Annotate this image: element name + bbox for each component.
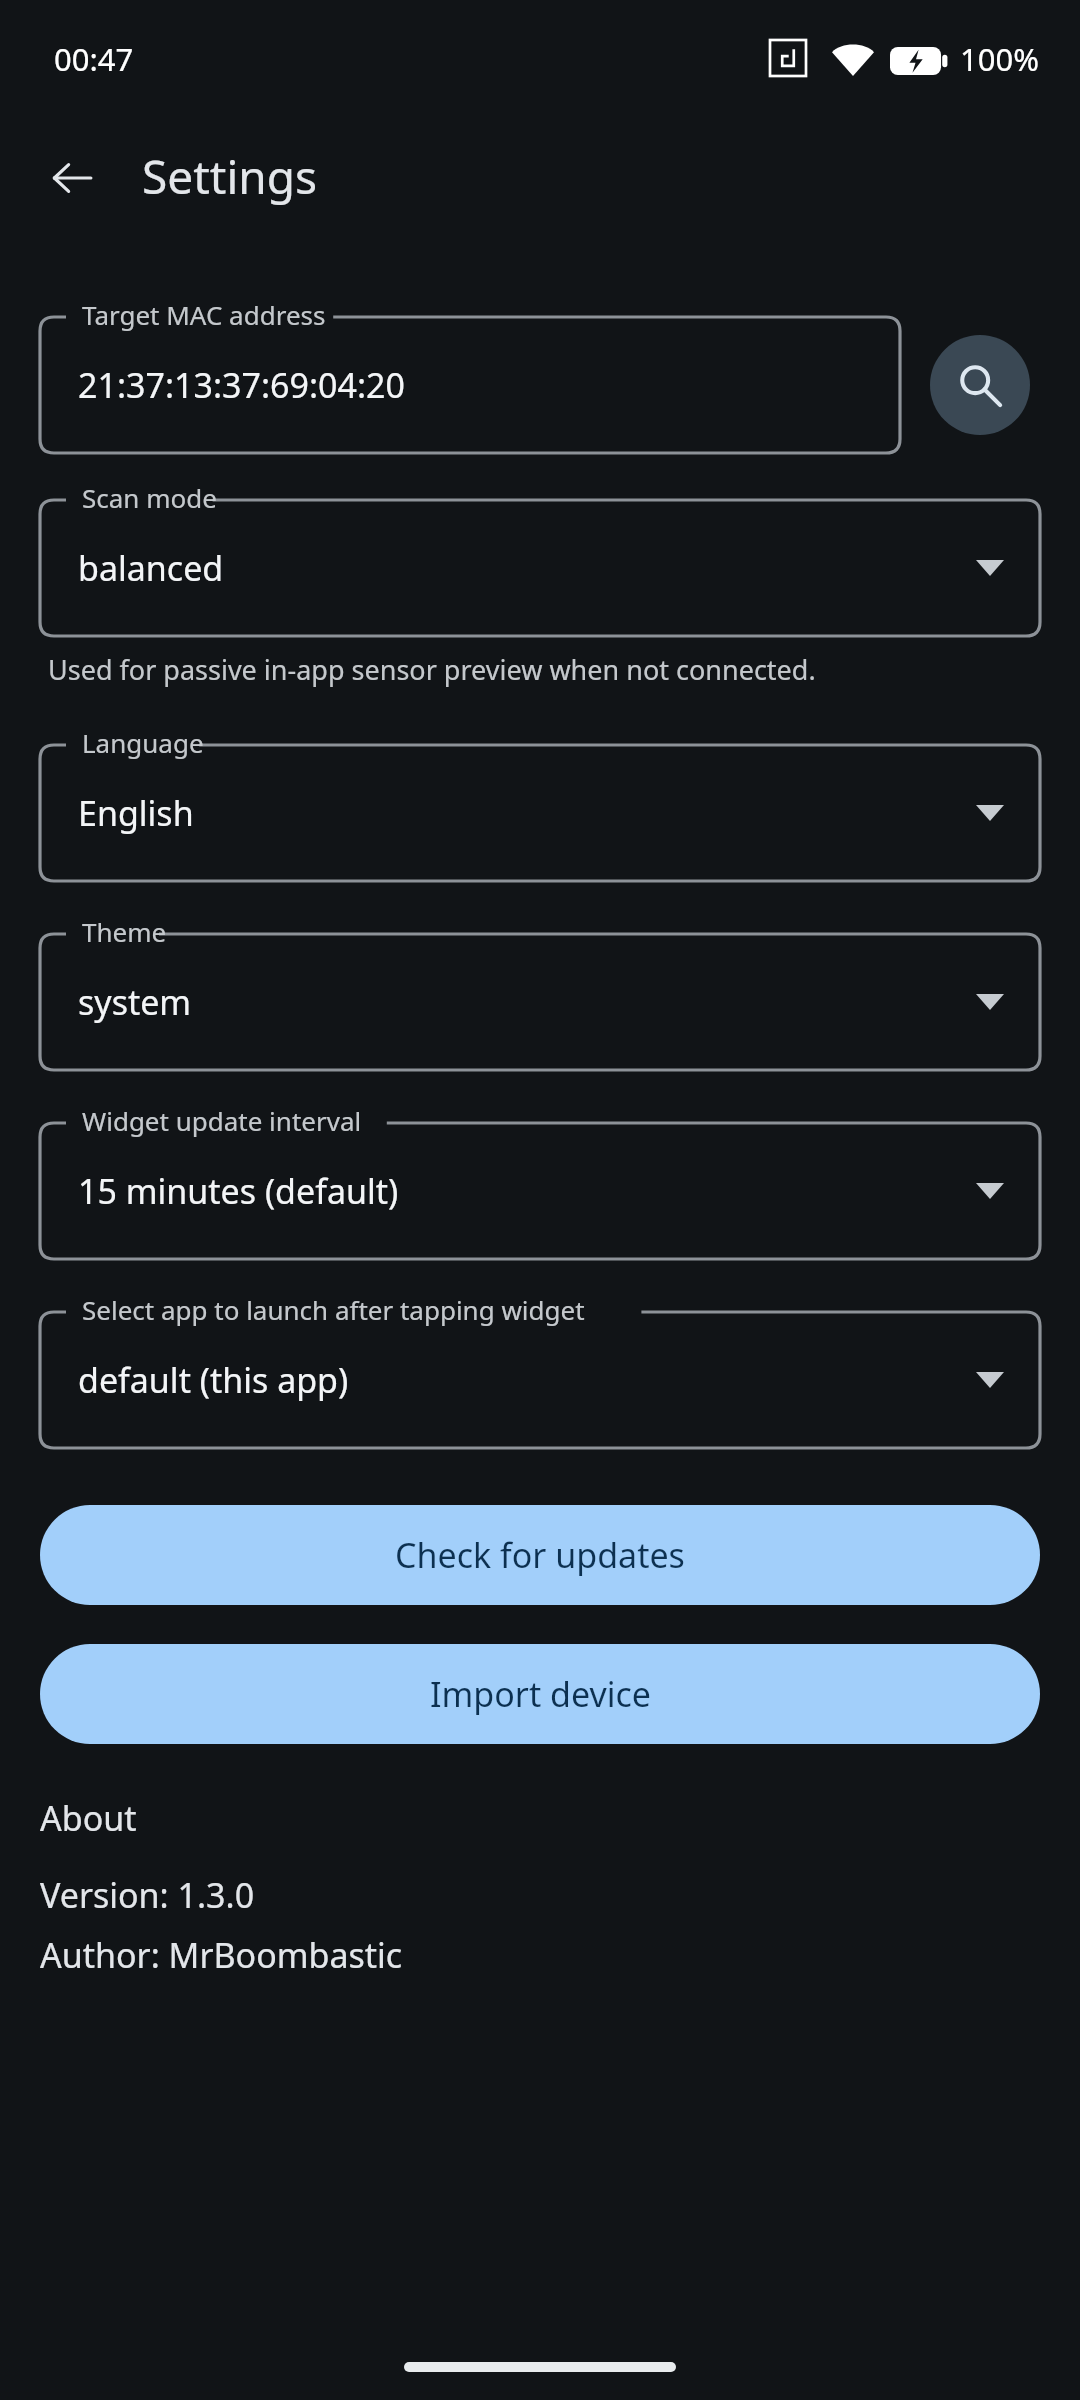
staticText: system	[78, 979, 192, 1025]
staticText: Theme	[82, 914, 167, 949]
button[interactable]: 15 minutes (default)	[40, 1123, 1040, 1259]
staticText: 21:37:13:37:69:04:20	[78, 362, 405, 408]
staticText: balanced	[78, 545, 224, 591]
button[interactable]: default (this app)	[40, 1312, 1040, 1448]
staticText: English	[78, 790, 194, 836]
button[interactable]: balanced	[40, 500, 1040, 636]
staticText: Select app to launch after tapping widge…	[82, 1292, 585, 1327]
staticText: Scan mode	[82, 480, 217, 515]
staticText: Settings	[142, 145, 318, 208]
staticText: Used for passive in-app sensor preview w…	[48, 651, 816, 688]
button[interactable]: English	[40, 745, 1040, 881]
button[interactable]: Check for updates	[40, 1505, 1040, 1605]
staticText: Language	[82, 725, 204, 760]
button[interactable]: system	[40, 934, 1040, 1070]
staticText: Author: MrBoombastic	[40, 1932, 403, 1978]
button[interactable]: 21:37:13:37:69:04:20	[40, 317, 900, 453]
staticText: 100%	[960, 38, 1039, 80]
staticText: Version: 1.3.0	[40, 1872, 255, 1918]
button[interactable]: Search	[930, 335, 1030, 435]
staticText: Widget update interval	[82, 1103, 362, 1138]
staticText: About	[40, 1795, 137, 1841]
staticText: Import device	[430, 1671, 651, 1717]
staticText: 00:47	[54, 38, 134, 80]
staticText: Check for updates	[395, 1532, 685, 1578]
staticText: Target MAC address	[82, 297, 326, 332]
staticText: 15 minutes (default)	[78, 1168, 399, 1214]
button[interactable]: Import device	[40, 1644, 1040, 1744]
button[interactable]: Back	[34, 140, 110, 216]
staticText: default (this app)	[78, 1357, 349, 1403]
